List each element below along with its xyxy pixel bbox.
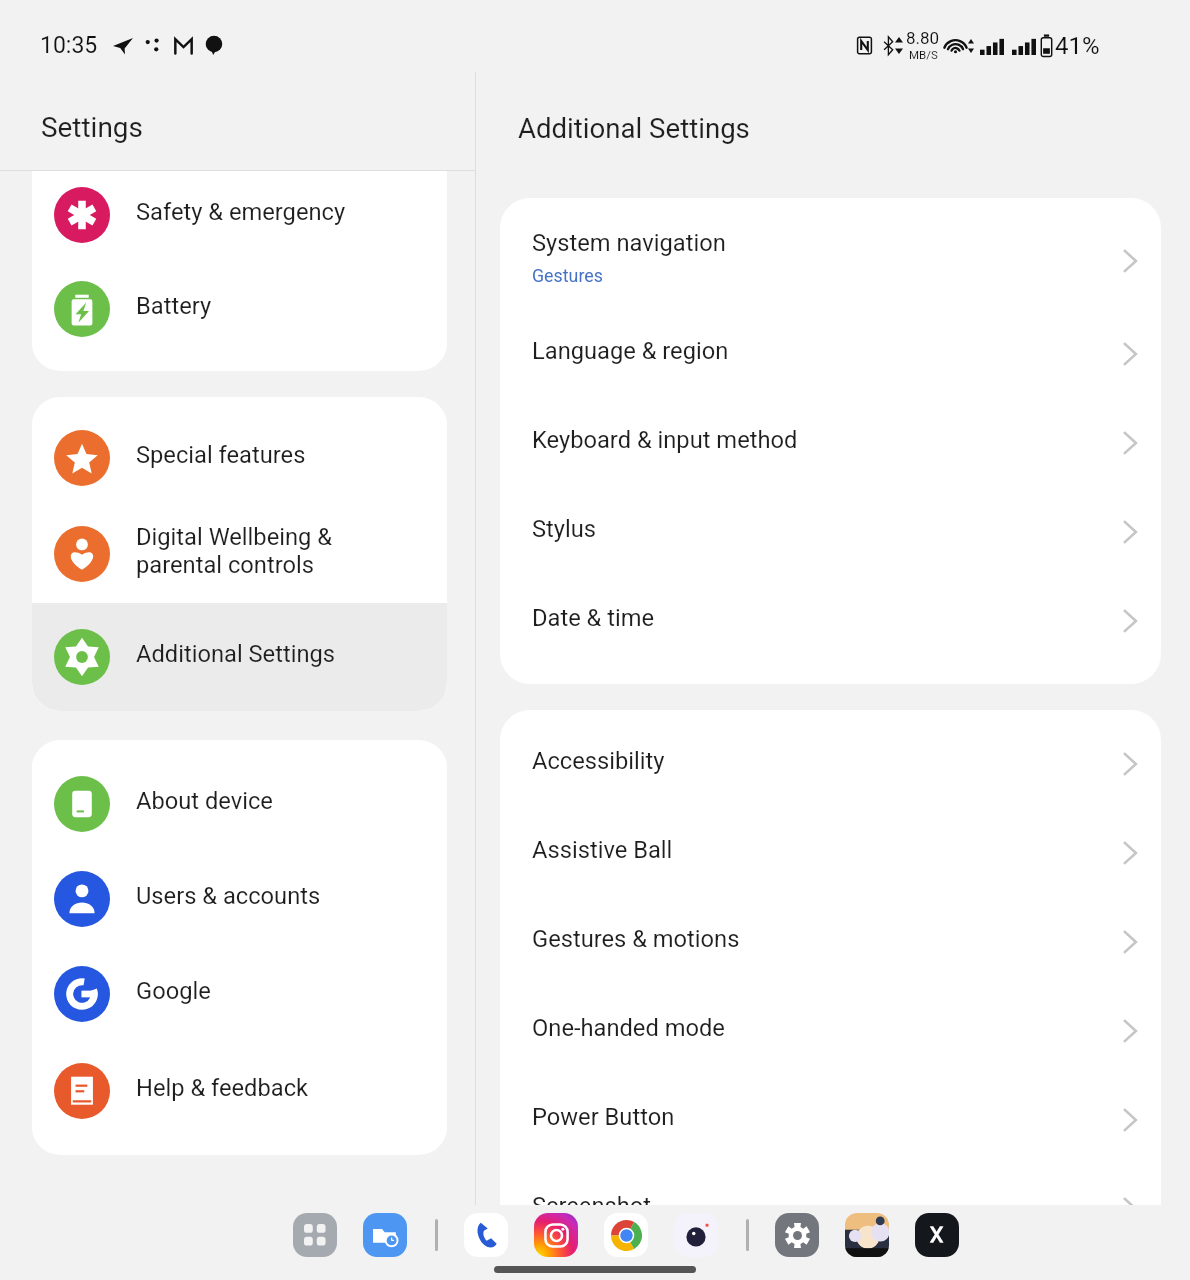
button[interactable]: Special features xyxy=(32,411,447,505)
staticText: Keyboard & input method xyxy=(532,426,798,454)
staticText: Date & time xyxy=(532,604,655,632)
staticText: One-handed mode xyxy=(532,1014,725,1042)
button[interactable]: Chrome xyxy=(604,1213,648,1257)
staticText: Gestures xyxy=(532,265,603,286)
staticText: Screenshot xyxy=(532,1192,652,1220)
button[interactable]: Battery xyxy=(32,259,447,359)
staticText: Settings xyxy=(41,111,143,144)
staticText: Stylus xyxy=(532,515,597,543)
button[interactable]: Settings xyxy=(775,1213,819,1257)
button[interactable]: Users & accounts xyxy=(32,851,447,946)
staticText: Power Button xyxy=(532,1103,675,1131)
staticText: 41% xyxy=(1055,32,1100,60)
staticText: Assistive Ball xyxy=(532,836,673,864)
button[interactable]: About device xyxy=(32,756,447,851)
button[interactable]: Screenshot xyxy=(500,1164,1161,1253)
button[interactable]: Date & time xyxy=(500,576,1161,665)
staticText: 8.80 xyxy=(906,28,940,48)
staticText: Google xyxy=(136,977,211,1005)
button[interactable]: Language & region xyxy=(500,309,1161,398)
button[interactable]: Keyboard & input method xyxy=(500,398,1161,487)
staticText: Special features xyxy=(136,441,306,469)
button[interactable]: X xyxy=(915,1213,959,1257)
staticText: Digital Wellbeing & xyxy=(136,523,332,551)
button[interactable]: Phone xyxy=(464,1213,508,1257)
staticText: Help & feedback xyxy=(136,1074,309,1102)
staticText: Additional Settings xyxy=(136,640,336,668)
button[interactable]: Safety & emergency xyxy=(32,171,447,259)
button[interactable]: Camera xyxy=(674,1213,718,1257)
staticText: Battery xyxy=(136,292,212,320)
button[interactable]: One-handed mode xyxy=(500,986,1161,1075)
staticText: Language & region xyxy=(532,337,729,365)
button[interactable]: Instagram xyxy=(534,1213,578,1257)
button[interactable]: Recent files xyxy=(363,1213,407,1257)
button[interactable]: Additional Settings xyxy=(32,603,447,711)
button[interactable]: Gestures & motions xyxy=(500,897,1161,986)
staticText: Users & accounts xyxy=(136,882,321,910)
staticText: MB/S xyxy=(909,48,938,61)
button[interactable]: Power Button xyxy=(500,1075,1161,1164)
button[interactable]: System navigation xyxy=(500,212,1161,309)
staticText: Additional Settings xyxy=(518,112,750,144)
staticText: System navigation xyxy=(532,229,726,257)
staticText: Gestures & motions xyxy=(532,925,740,953)
button[interactable]: App drawer xyxy=(293,1213,337,1257)
staticText: parental controls xyxy=(136,551,314,579)
staticText: Safety & emergency xyxy=(136,198,346,226)
staticText: X xyxy=(930,1223,944,1248)
staticText: 10:35 xyxy=(40,32,98,59)
button[interactable]: Accessibility xyxy=(500,719,1161,808)
button[interactable]: Game xyxy=(845,1213,889,1257)
staticText: Accessibility xyxy=(532,747,665,775)
button[interactable]: Digital Wellbeing & xyxy=(32,505,447,603)
button[interactable]: Help & feedback xyxy=(32,1042,447,1139)
button[interactable]: Stylus xyxy=(500,487,1161,576)
button[interactable]: Google xyxy=(32,946,447,1042)
button[interactable]: Assistive Ball xyxy=(500,808,1161,897)
staticText: About device xyxy=(136,787,273,815)
